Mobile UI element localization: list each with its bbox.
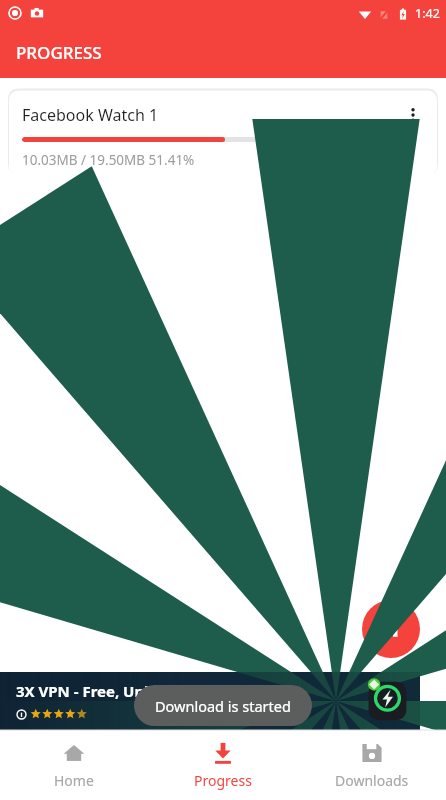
button[interactable]: Downloads [297,730,446,800]
staticText: Progress [194,771,252,790]
button[interactable]: Progress [148,730,297,800]
staticText: PROGRESS [16,41,102,64]
staticText: Downloads [335,771,409,790]
button[interactable]: Facebook Watch 1 [8,88,438,175]
button[interactable]: Home [0,730,148,800]
button[interactable]: Pause downloads [362,600,420,658]
button[interactable]: 3X VPN - Free, Unlimited [0,672,420,730]
button[interactable]: More options [398,100,428,130]
staticText: Home [54,771,94,790]
staticText: 10.03MB / 19.50MB 51.41% [22,151,195,169]
staticText: Facebook Watch 1 [22,104,398,126]
staticText: 3X VPN - Free, Unlimited [16,681,198,701]
staticText: 1:42 [415,5,440,22]
staticText: Download is started [155,696,291,716]
